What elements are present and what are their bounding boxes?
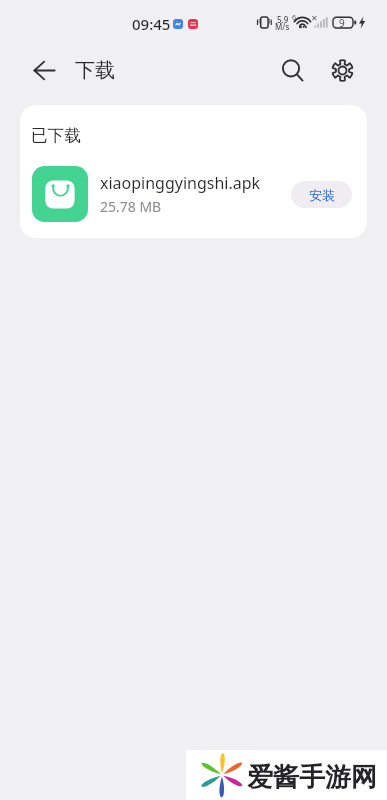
button[interactable]: xiaopinggyingshi.apk [32, 164, 352, 224]
button[interactable]: Back [24, 49, 66, 91]
button[interactable]: Search [271, 49, 313, 91]
staticText: 9 [339, 16, 345, 30]
button[interactable]: 安装 [291, 181, 352, 208]
staticText: M/s [275, 21, 290, 32]
staticText: 爱酱手游网 [247, 761, 377, 794]
staticText: xiaopinggyingshi.apk [100, 172, 261, 194]
staticText: 5.9 [277, 14, 289, 25]
staticText: ✕ [311, 14, 318, 23]
staticText: 09:45 [132, 14, 171, 34]
button[interactable]: Settings [321, 49, 363, 91]
staticText: 25.78 MB [100, 197, 162, 216]
staticText: 安装 [309, 187, 335, 203]
staticText: 6 [292, 13, 297, 23]
staticText: 已下载 [31, 125, 81, 146]
staticText: 下载 [75, 58, 115, 83]
